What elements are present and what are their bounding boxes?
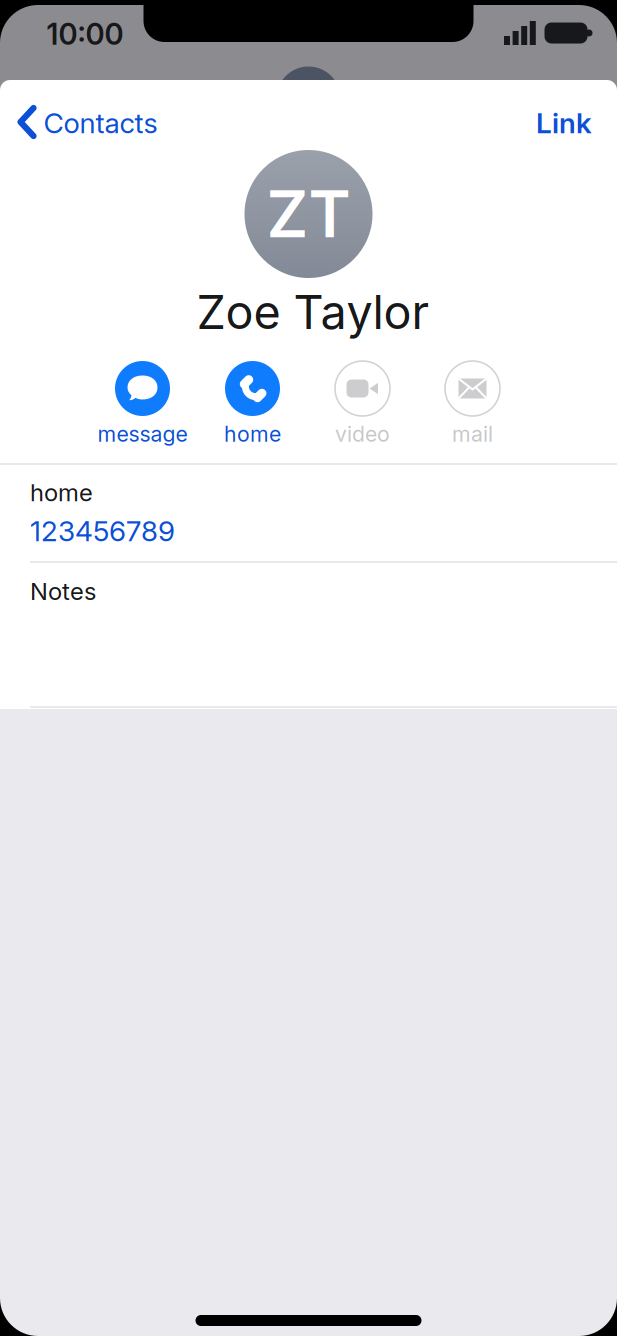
- button[interactable]: Contacts: [18, 106, 157, 139]
- staticText: home: [30, 478, 93, 507]
- staticText: home: [224, 421, 281, 447]
- staticText: 10:00: [46, 17, 123, 51]
- button[interactable]: Notes: [30, 563, 617, 707]
- staticText: ZT: [266, 176, 350, 252]
- button[interactable]: mail: [417, 361, 527, 449]
- button[interactable]: home: [30, 478, 617, 548]
- button[interactable]: Link: [536, 106, 592, 139]
- staticText: mail: [452, 421, 493, 447]
- button[interactable]: message: [87, 361, 197, 449]
- button[interactable]: video: [307, 361, 417, 449]
- staticText: Notes: [30, 577, 96, 605]
- staticText: Link: [536, 106, 592, 139]
- staticText: Zoe Taylor: [196, 284, 429, 340]
- staticText: message: [97, 421, 187, 447]
- button[interactable]: home: [197, 361, 307, 449]
- staticText: 123456789: [30, 515, 175, 548]
- staticText: video: [335, 421, 390, 447]
- staticText: Contacts: [43, 106, 157, 139]
